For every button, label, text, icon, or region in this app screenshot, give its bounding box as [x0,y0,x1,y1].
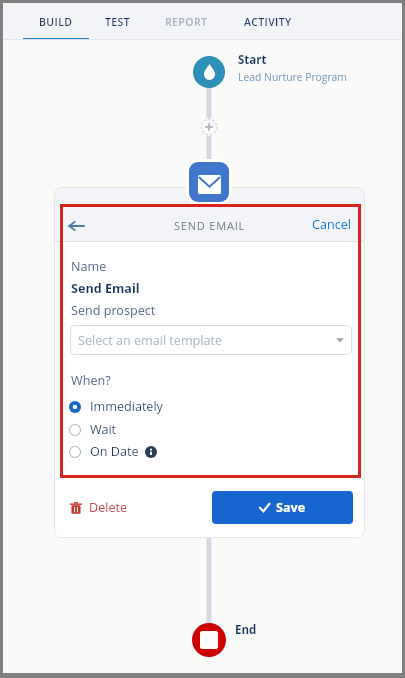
staticText: REPORT [165,15,208,29]
button[interactable]: TEST [89,3,147,40]
staticText: Wait [90,421,117,438]
button[interactable]: Immediately [69,397,163,416]
staticText: Save [276,499,306,516]
button[interactable]: BUILD [23,3,89,40]
staticText: End [235,622,257,638]
button[interactable]: Delete [66,493,132,522]
button[interactable]: Select an email template [70,325,352,355]
staticText: Immediately [90,398,163,415]
staticText: Select an email template [78,332,223,349]
staticText: TEST [105,15,131,29]
staticText: Start [238,52,267,68]
button[interactable]: Add step [200,118,218,136]
staticText: On Date [90,443,139,460]
staticText: ACTIVITY [244,15,292,29]
staticText: BUILD [39,15,73,29]
staticText: SEND EMAIL [174,218,246,233]
staticText: Cancel [312,216,351,233]
button[interactable]: Back [63,213,89,239]
button[interactable]: Cancel [312,216,351,233]
staticText: Lead Nurture Program [238,70,347,84]
button[interactable]: End node [192,623,226,657]
button[interactable]: Wait [69,420,117,439]
button[interactable]: On Date [69,442,157,461]
button[interactable]: Send Email step [189,162,229,202]
button[interactable]: Save [212,491,353,524]
button[interactable]: REPORT [147,3,225,40]
button[interactable]: Start node [193,56,225,88]
button[interactable]: ACTIVITY [225,3,311,40]
staticText: Send Email [71,280,140,297]
staticText: Name [71,258,107,275]
staticText: When? [71,372,111,389]
staticText: Send prospect [71,302,156,319]
staticText: Delete [89,499,128,516]
